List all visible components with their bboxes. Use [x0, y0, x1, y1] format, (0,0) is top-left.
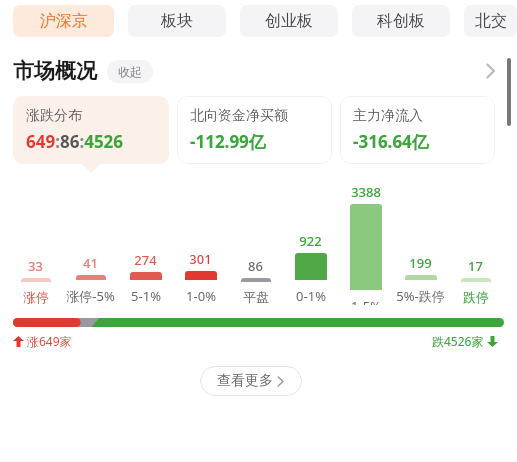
button[interactable]: 北交	[464, 5, 517, 37]
staticText: 86	[248, 257, 263, 275]
button[interactable]: 科创板	[352, 5, 450, 37]
button[interactable]: 查看更多	[200, 366, 302, 396]
staticText: 649:86:4526	[26, 130, 124, 153]
staticText: 跌4526家	[432, 333, 484, 349]
staticText: 5%-跌停	[396, 287, 445, 305]
staticText: 北交	[475, 11, 507, 31]
staticText: 0-1%	[296, 287, 326, 305]
button[interactable]: 沪深京	[13, 5, 114, 37]
button[interactable]: 创业板	[240, 5, 338, 37]
button[interactable]: 涨跌分布	[13, 96, 169, 164]
staticText: 市场概况	[13, 58, 97, 84]
staticText: 274	[134, 251, 157, 269]
staticText: 涨649家	[27, 333, 72, 349]
staticText: -112.99亿	[190, 130, 266, 153]
staticText: 1-5%	[351, 297, 381, 305]
staticText: 涨跌分布	[26, 107, 82, 125]
staticText: 创业板	[265, 11, 313, 31]
staticText: 沪深京	[40, 11, 88, 31]
staticText: 922	[299, 232, 322, 250]
staticText: 主力净流入	[353, 107, 423, 125]
staticText: 33	[28, 257, 43, 275]
staticText: 板块	[161, 11, 193, 31]
staticText: 301	[189, 250, 212, 268]
button[interactable]: 收起	[107, 60, 153, 83]
staticText: 北向资金净买额	[190, 107, 288, 125]
button[interactable]: 板块	[128, 5, 226, 37]
staticText: 收起	[118, 64, 142, 79]
staticText: 1-0%	[186, 287, 216, 305]
staticText: 涨停	[23, 289, 49, 305]
button[interactable]: 主力净流入	[340, 96, 495, 164]
staticText: 涨停-5%	[66, 287, 115, 305]
staticText: -316.64亿	[353, 130, 429, 153]
button[interactable]: 更多	[479, 58, 505, 84]
staticText: 41	[83, 254, 98, 272]
staticText: 17	[468, 257, 483, 275]
staticText: 5-1%	[131, 287, 161, 305]
staticText: 跌停	[463, 289, 489, 305]
staticText: 3388	[351, 183, 381, 201]
staticText: 199	[409, 254, 432, 272]
button[interactable]: 北向资金净买额	[177, 96, 332, 164]
staticText: 科创板	[377, 11, 425, 31]
staticText: 查看更多	[217, 372, 273, 390]
staticText: 平盘	[243, 289, 269, 305]
